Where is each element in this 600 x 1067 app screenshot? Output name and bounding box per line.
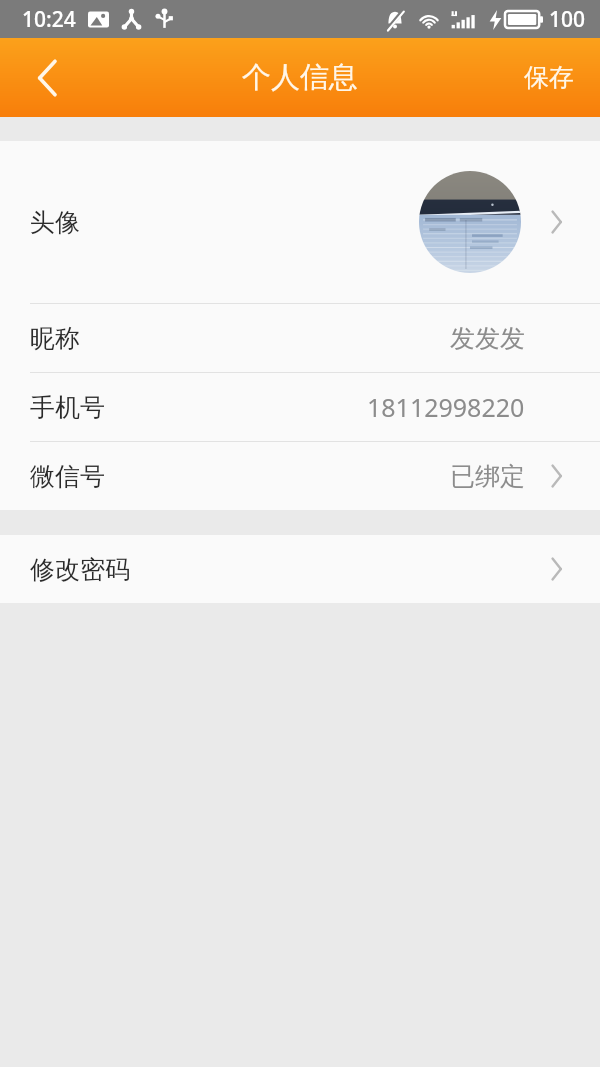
button[interactable]: 修改密码 <box>0 535 600 603</box>
staticText: 100 <box>549 5 586 34</box>
button[interactable]: 微信号 <box>0 442 600 510</box>
staticText: 10:24 <box>22 5 76 34</box>
staticText: 手机号 <box>30 392 105 423</box>
staticText: 昵称 <box>30 323 80 354</box>
staticText: 个人信息 <box>242 59 358 96</box>
button[interactable]: 保存 <box>498 38 600 117</box>
staticText: 保存 <box>524 62 574 93</box>
staticText: 头像 <box>30 207 80 238</box>
staticText: 发发发 <box>450 323 525 354</box>
staticText: 已绑定 <box>450 461 525 492</box>
staticText: 微信号 <box>30 461 105 492</box>
staticText: 修改密码 <box>30 554 130 585</box>
button[interactable]: 昵称 <box>0 304 600 372</box>
button[interactable]: 头像 <box>0 141 600 303</box>
staticText: 18112998220 <box>367 390 525 424</box>
button[interactable]: 手机号 <box>0 373 600 441</box>
button[interactable]: 返回 <box>0 38 96 117</box>
